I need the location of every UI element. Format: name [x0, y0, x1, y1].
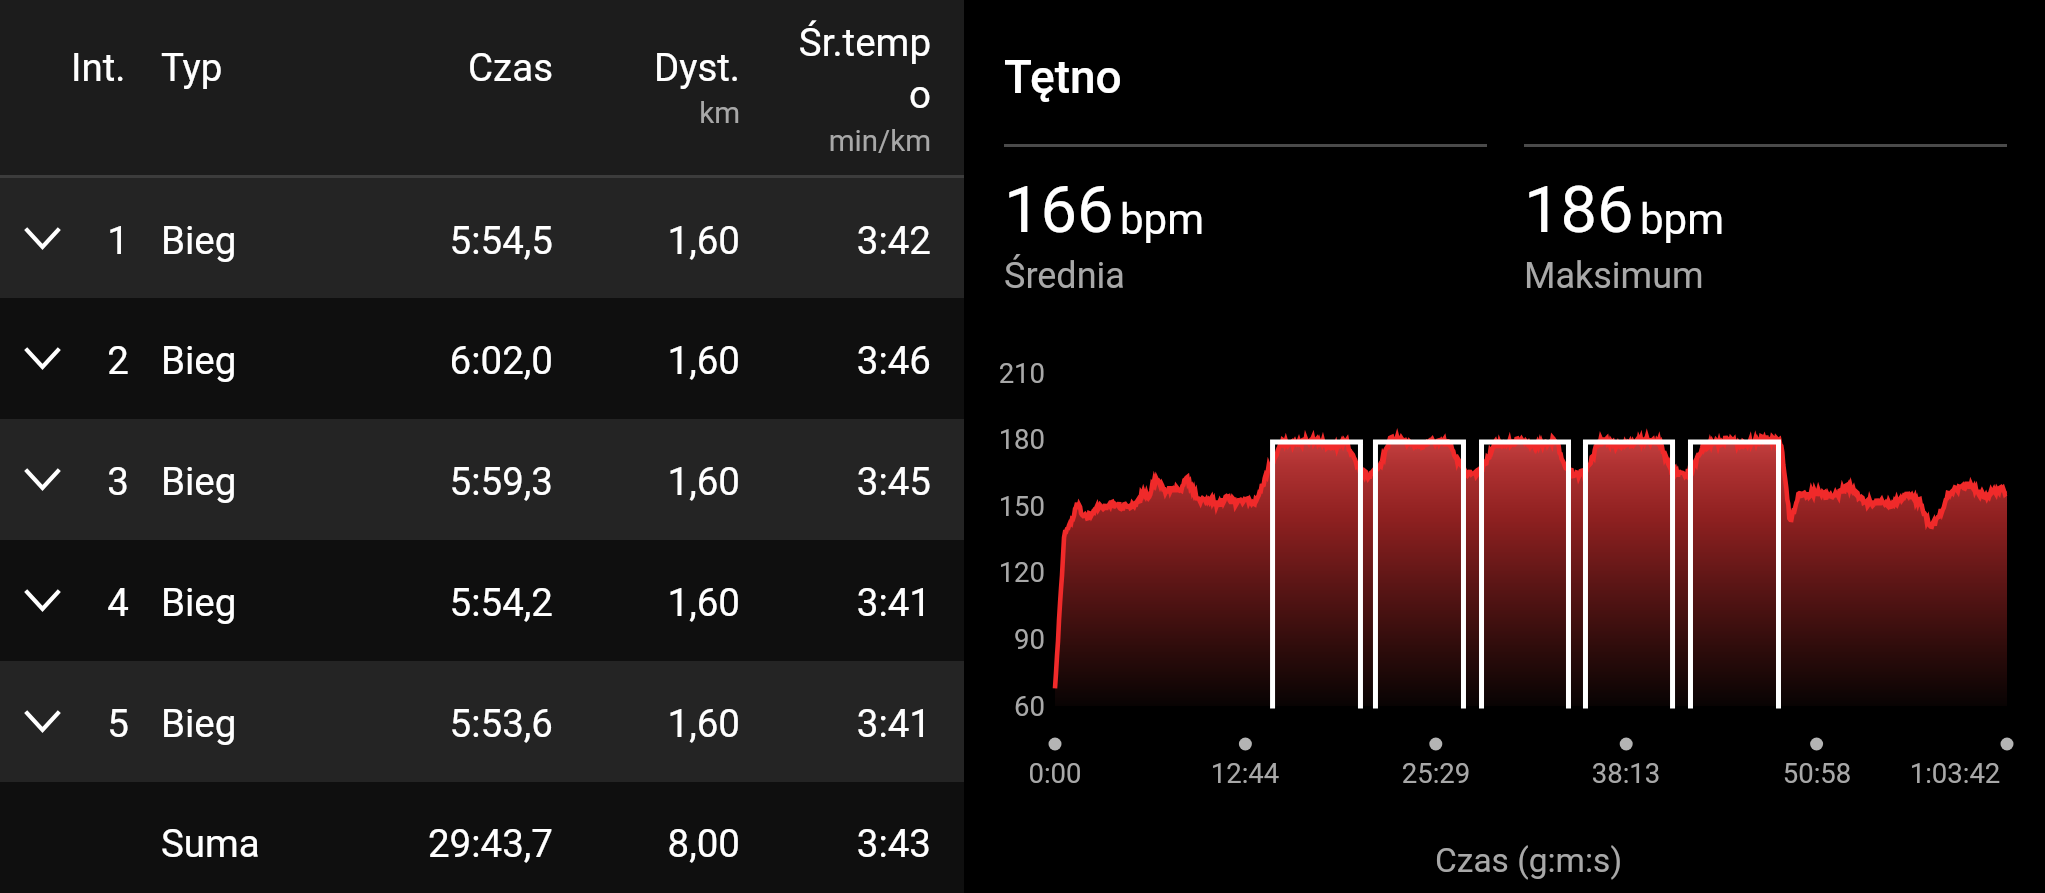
staticText: 166: [1004, 172, 1114, 248]
staticText: 4: [79, 580, 129, 625]
staticText: km: [580, 96, 740, 131]
staticText: Maksimum: [1524, 255, 1704, 297]
staticText: 8,00: [580, 821, 740, 866]
staticText: 12:44: [1155, 757, 1335, 789]
staticText: Bieg: [161, 218, 237, 263]
staticText: 1,60: [580, 701, 740, 746]
staticText: 1,60: [580, 580, 740, 625]
staticText: 6:02,0: [380, 338, 553, 383]
staticText: Int.: [71, 45, 126, 90]
button[interactable]: Rozwiń interwał 2: [0, 298, 964, 419]
staticText: 150: [945, 490, 1045, 522]
button[interactable]: Rozwiń interwał 1: [0, 178, 964, 298]
other: Rozwiń interwał 3: [25, 469, 60, 490]
staticText: Bieg: [161, 580, 237, 625]
staticText: Średnia: [1004, 255, 1125, 297]
staticText: 90: [945, 623, 1045, 655]
staticText: 3:45: [780, 459, 931, 504]
staticText: Śr.tempo: [780, 20, 931, 118]
staticText: 38:13: [1536, 757, 1716, 789]
staticText: 5:53,6: [380, 701, 553, 746]
staticText: 5:59,3: [380, 459, 553, 504]
button[interactable]: Suma: [0, 782, 964, 893]
staticText: 1,60: [580, 218, 740, 263]
staticText: Czas: [380, 45, 553, 90]
staticText: Bieg: [161, 338, 237, 383]
staticText: 1,60: [580, 459, 740, 504]
staticText: min/km: [780, 124, 931, 159]
staticText: Suma: [161, 821, 260, 866]
other: Rozwiń interwał 2: [25, 348, 60, 369]
staticText: 25:29: [1346, 757, 1526, 789]
staticText: 1:03:42: [1865, 757, 2045, 789]
staticText: 3: [79, 459, 129, 504]
staticText: 3:46: [780, 338, 931, 383]
staticText: 5: [79, 701, 129, 746]
other: Rozwiń interwał 1: [25, 228, 60, 249]
staticText: 3:41: [780, 701, 931, 746]
button[interactable]: Rozwiń interwał 5: [0, 661, 964, 782]
staticText: 50:58: [1727, 757, 1907, 789]
other: Rozwiń interwał 4: [25, 590, 60, 611]
staticText: bpm: [1120, 195, 1204, 244]
staticText: 180: [945, 423, 1045, 455]
other: Rozwiń interwał 5: [25, 711, 60, 732]
staticText: Czas (g:m:s): [988, 841, 2045, 880]
staticText: 2: [79, 338, 129, 383]
staticText: 3:43: [780, 821, 931, 866]
staticText: 29:43,7: [380, 821, 553, 866]
staticText: Tętno: [1004, 50, 1122, 104]
staticText: 0:00: [965, 757, 1145, 789]
staticText: 5:54,2: [380, 580, 553, 625]
staticText: bpm: [1640, 195, 1724, 244]
button[interactable]: Rozwiń interwał 3: [0, 419, 964, 540]
staticText: 60: [945, 690, 1045, 722]
staticText: Bieg: [161, 701, 237, 746]
staticText: 186: [1524, 172, 1634, 248]
button[interactable]: Rozwiń interwał 4: [0, 540, 964, 661]
staticText: Typ: [161, 45, 223, 90]
staticText: 1,60: [580, 338, 740, 383]
staticText: 120: [945, 556, 1045, 588]
staticText: 1: [79, 218, 129, 263]
staticText: 3:42: [780, 218, 931, 263]
staticText: 3:41: [780, 580, 931, 625]
staticText: 210: [945, 357, 1045, 389]
staticText: Dyst.: [580, 45, 740, 90]
staticText: Bieg: [161, 459, 237, 504]
staticText: 5:54,5: [380, 218, 553, 263]
